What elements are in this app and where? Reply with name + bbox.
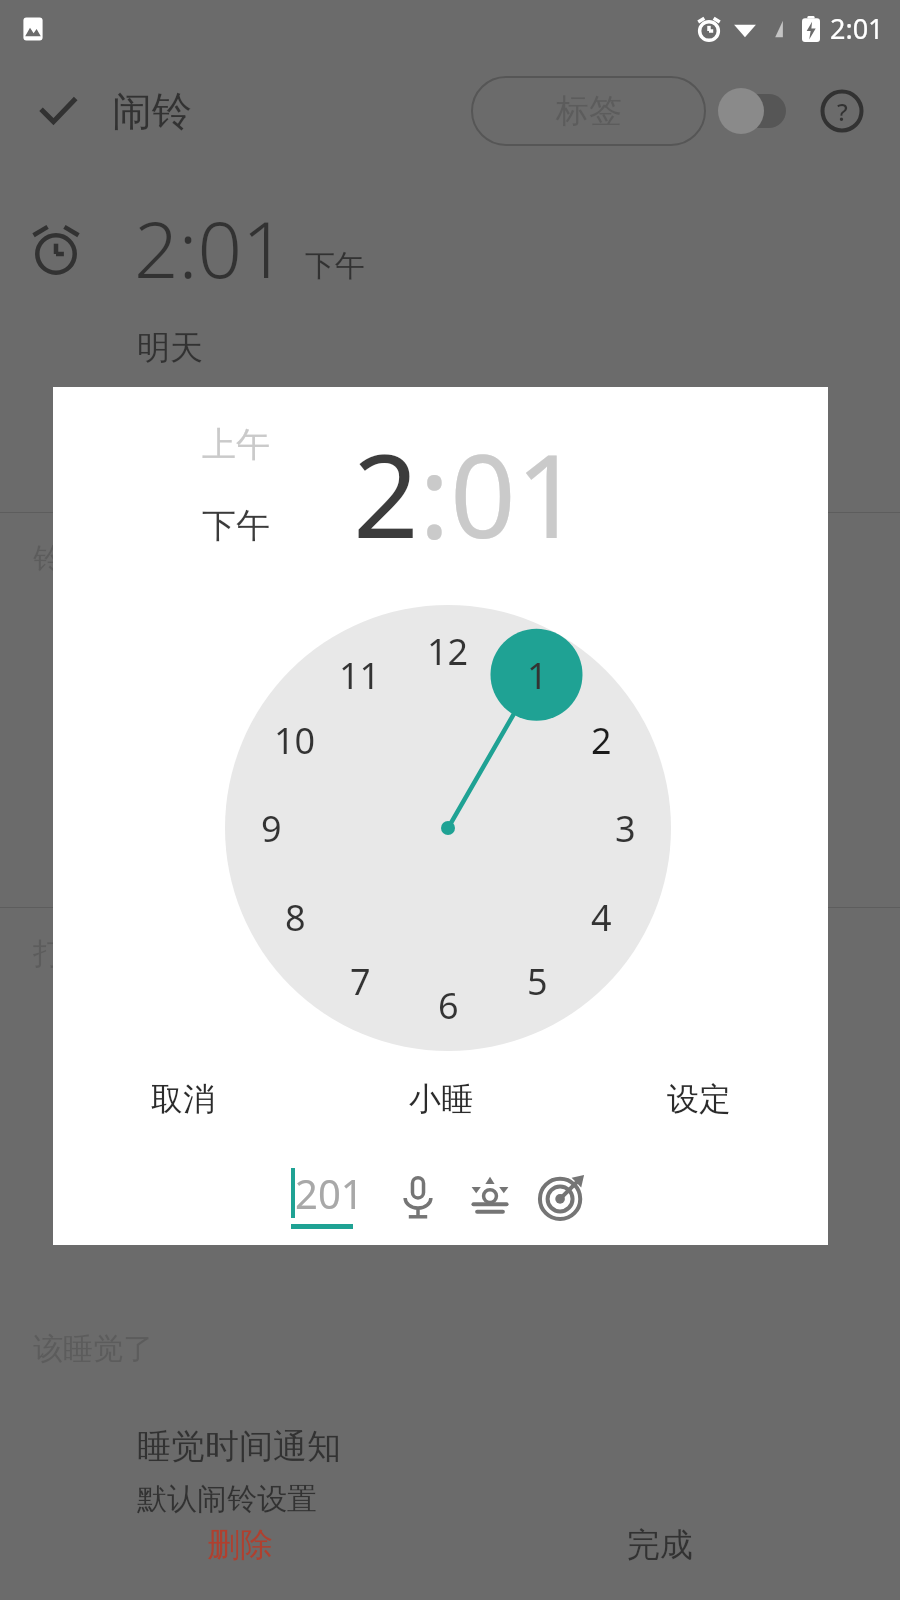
- staticText: 打: [33, 935, 63, 973]
- button[interactable]: Voice input: [390, 1169, 446, 1225]
- staticText: 下午: [305, 247, 365, 285]
- button[interactable]: 8: [249, 871, 341, 963]
- staticText: 完成: [627, 1524, 693, 1566]
- button[interactable]: 删除: [30, 1490, 450, 1600]
- button[interactable]: 标签: [471, 76, 706, 146]
- staticText: :: [419, 415, 450, 572]
- button[interactable]: 7: [314, 935, 406, 1027]
- staticText: 1: [527, 651, 548, 700]
- staticText: 11: [339, 651, 381, 700]
- staticText: ?: [837, 95, 848, 128]
- staticText: 标签: [556, 90, 622, 132]
- staticText: 闹铃: [112, 86, 192, 136]
- button[interactable]: 6: [402, 959, 494, 1051]
- button[interactable]: Help: [814, 83, 870, 139]
- button[interactable]: 小睡: [312, 1059, 570, 1139]
- staticText: 铃: [33, 540, 63, 578]
- button[interactable]: Confirm: [30, 83, 86, 139]
- staticText: 5: [527, 957, 548, 1006]
- staticText: 01: [450, 415, 582, 572]
- button[interactable]: 5: [491, 935, 583, 1027]
- button[interactable]: 12: [402, 605, 494, 697]
- button[interactable]: Theme: [462, 1169, 518, 1225]
- button[interactable]: 完成: [450, 1490, 870, 1600]
- button[interactable]: 3: [579, 782, 671, 874]
- staticText: 明天: [137, 327, 203, 369]
- staticText: 该睡觉了: [33, 1330, 153, 1368]
- button[interactable]: Toggle: [718, 83, 796, 139]
- staticText: 设定: [667, 1079, 731, 1119]
- staticText: 201: [295, 1166, 364, 1220]
- staticText: 2: [591, 716, 612, 765]
- staticText: 下午: [202, 504, 270, 547]
- staticText: 上午: [202, 423, 270, 466]
- button[interactable]: Target: [534, 1169, 590, 1225]
- button[interactable]: 10: [249, 694, 341, 786]
- staticText: 2:01: [830, 10, 884, 47]
- staticText: 睡觉时间通知: [137, 1425, 341, 1468]
- staticText: 12: [427, 627, 469, 676]
- staticText: 7: [350, 957, 371, 1006]
- button[interactable]: 设定: [570, 1059, 828, 1139]
- button[interactable]: 2: [353, 415, 419, 572]
- staticText: 默认闹铃设置: [137, 1480, 317, 1518]
- staticText: 删除: [207, 1524, 273, 1566]
- button[interactable]: 2: [555, 694, 647, 786]
- staticText: 小睡: [409, 1079, 473, 1119]
- button[interactable]: 下午: [188, 498, 284, 553]
- staticText: 9: [261, 804, 282, 853]
- button[interactable]: 取消: [53, 1059, 312, 1139]
- staticText: 2: [353, 415, 419, 572]
- staticText: 8: [285, 893, 306, 942]
- button[interactable]: 9: [225, 782, 317, 874]
- button[interactable]: 1: [491, 629, 583, 721]
- button[interactable]: 01: [450, 415, 582, 572]
- staticText: 3: [615, 804, 636, 853]
- staticText: 2:01: [134, 195, 287, 301]
- staticText: 4: [591, 893, 612, 942]
- staticText: 取消: [151, 1079, 215, 1119]
- button[interactable]: 上午: [188, 417, 284, 472]
- button[interactable]: 201: [291, 1166, 364, 1229]
- button[interactable]: 4: [555, 871, 647, 963]
- staticText: 10: [274, 716, 316, 765]
- staticText: 6: [438, 981, 459, 1030]
- button[interactable]: 11: [314, 629, 406, 721]
